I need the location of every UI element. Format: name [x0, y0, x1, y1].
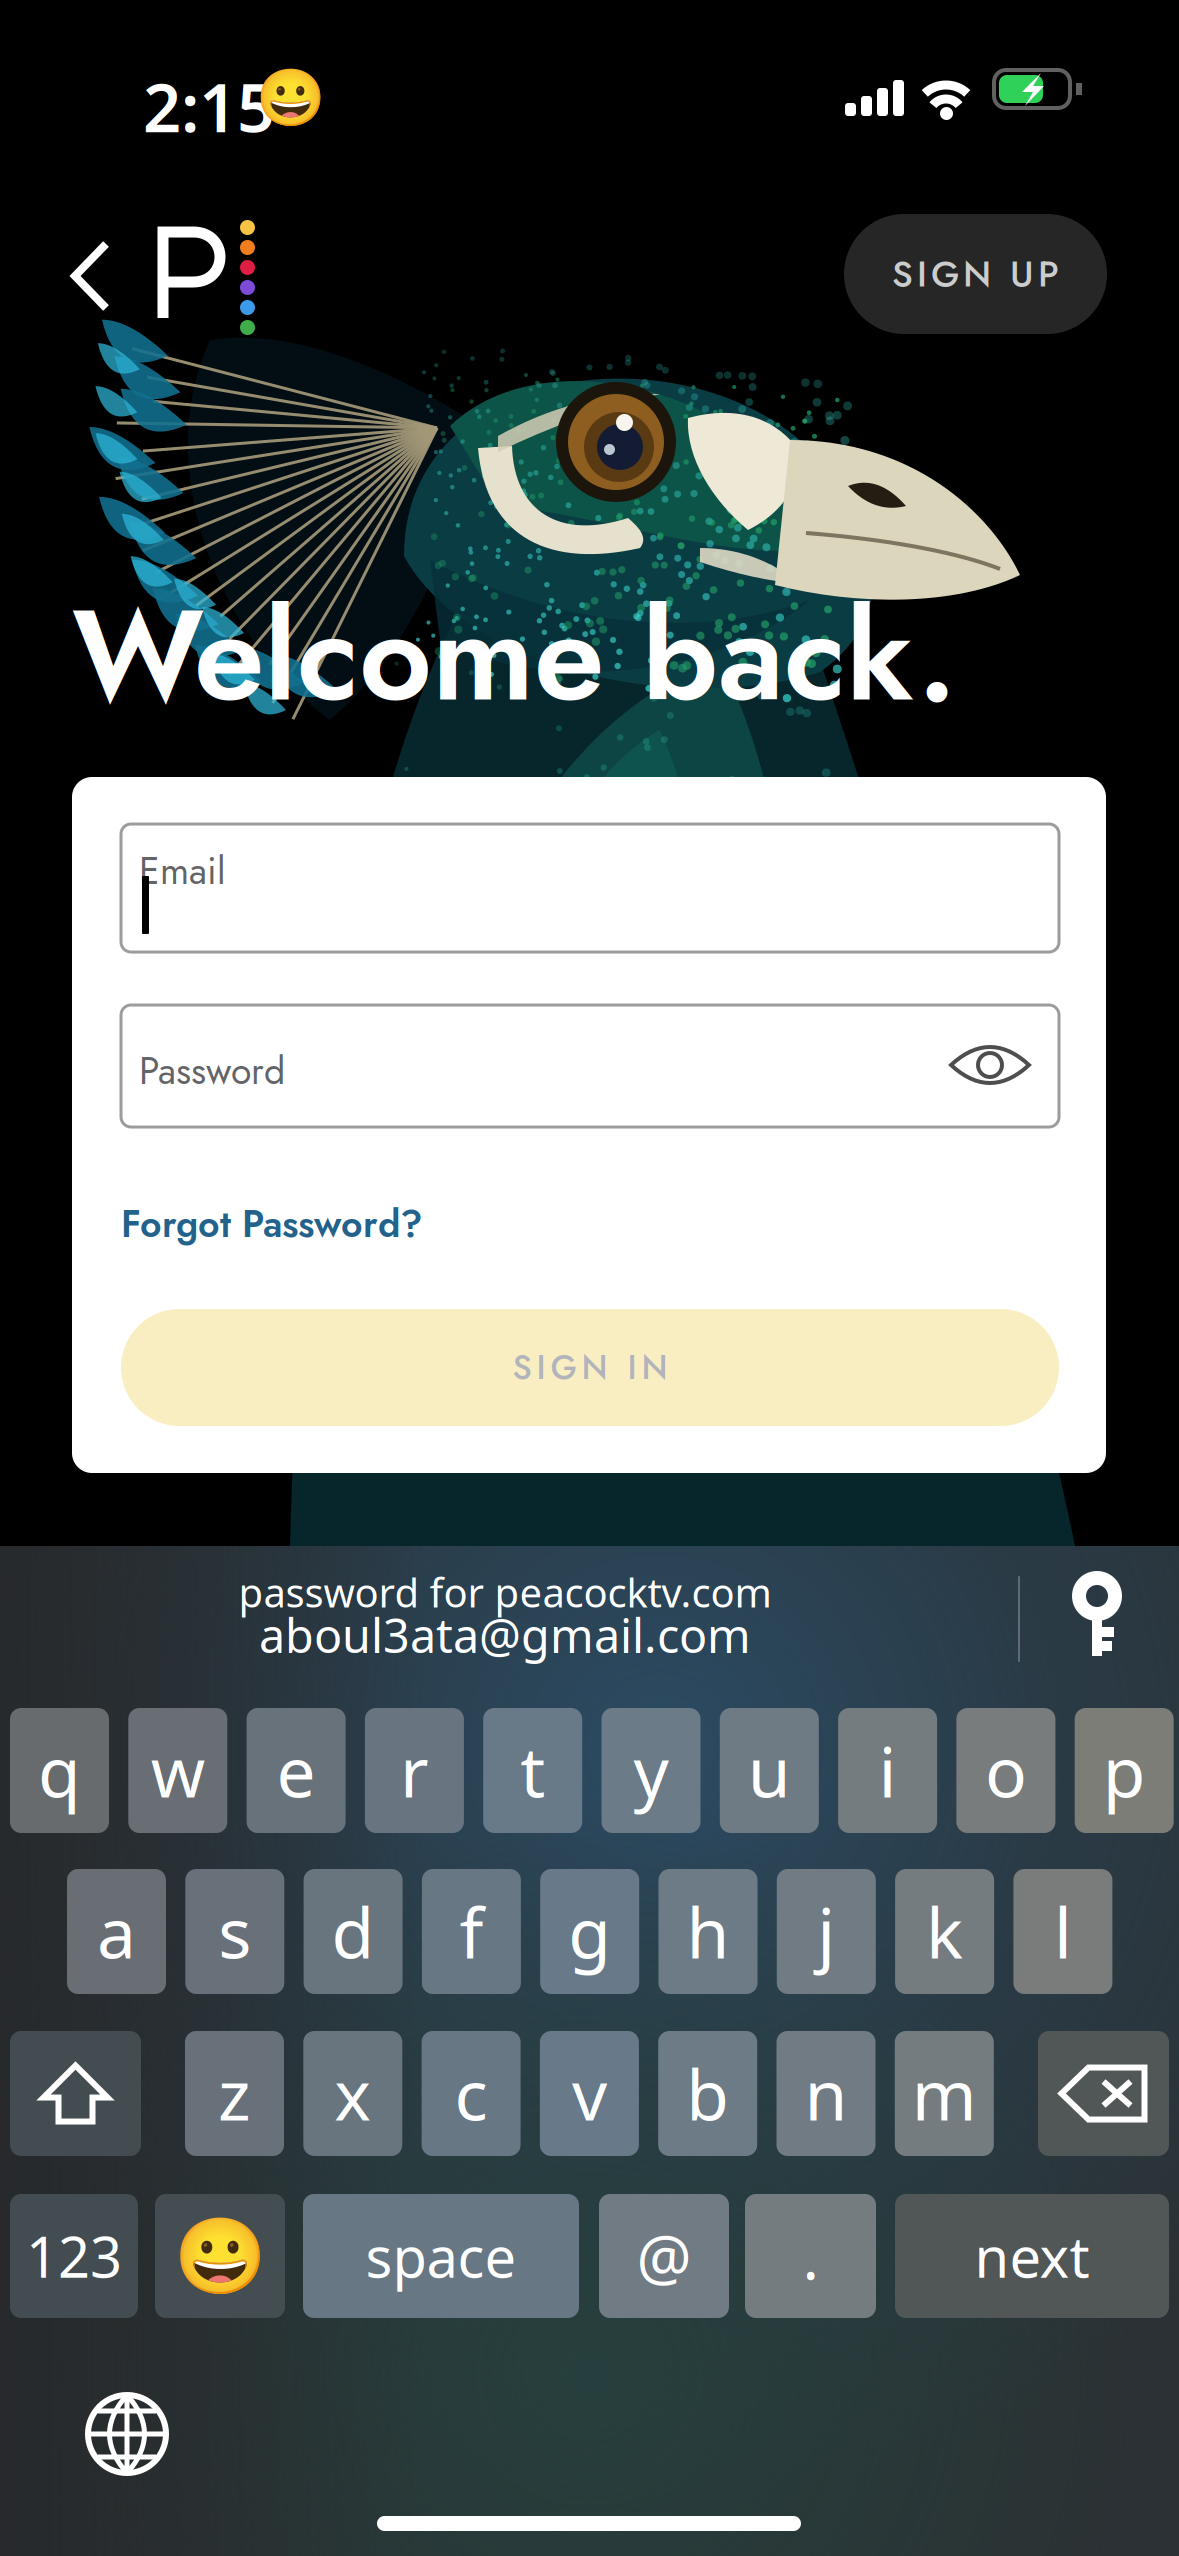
- button[interactable]: Delete: [1038, 2031, 1169, 2156]
- button[interactable]: g: [540, 1869, 639, 1994]
- button[interactable]: Show password: [947, 1035, 1033, 1095]
- staticText: n: [804, 2047, 847, 2140]
- staticText: k: [926, 1885, 963, 1978]
- staticText: g: [568, 1885, 611, 1978]
- button[interactable]: k: [895, 1869, 994, 1994]
- button[interactable]: Back: [60, 222, 124, 330]
- staticText: SIGN IN: [512, 1343, 667, 1392]
- button[interactable]: .: [745, 2194, 876, 2318]
- button[interactable]: Shift: [10, 2031, 141, 2156]
- staticText: o: [985, 1724, 1027, 1817]
- staticText: p: [1103, 1724, 1146, 1817]
- staticText: t: [520, 1724, 545, 1817]
- staticText: c: [455, 2047, 488, 2140]
- staticText: e: [277, 1724, 316, 1817]
- button[interactable]: p: [1075, 1708, 1174, 1833]
- staticText: z: [218, 2047, 251, 2140]
- staticText: x: [334, 2047, 371, 2140]
- staticText: aboul3ata@gmail.com: [259, 1604, 751, 1666]
- button[interactable]: r: [365, 1708, 464, 1833]
- staticText: b: [686, 2047, 729, 2140]
- button[interactable]: m: [895, 2031, 994, 2156]
- button[interactable]: @: [599, 2194, 729, 2318]
- staticText: q: [38, 1724, 81, 1817]
- staticText: SIGN UP: [892, 248, 1059, 300]
- button[interactable]: t: [483, 1708, 582, 1833]
- button[interactable]: h: [658, 1869, 757, 1994]
- staticText: h: [686, 1885, 729, 1978]
- button[interactable]: Forgot Password?: [121, 1197, 423, 1251]
- button[interactable]: c: [422, 2031, 521, 2156]
- button[interactable]: z: [185, 2031, 284, 2156]
- button[interactable]: e: [247, 1708, 346, 1833]
- button[interactable]: x: [303, 2031, 402, 2156]
- staticText: @: [636, 2215, 691, 2297]
- staticText: f: [459, 1885, 483, 1978]
- button[interactable]: b: [658, 2031, 757, 2156]
- staticText: a: [97, 1885, 136, 1978]
- button[interactable]: l: [1013, 1869, 1112, 1994]
- staticText: 123: [26, 2219, 122, 2293]
- button[interactable]: SIGN UP: [844, 214, 1107, 334]
- button[interactable]: i: [838, 1708, 937, 1833]
- staticText: .: [802, 2215, 818, 2297]
- button[interactable]: a: [67, 1869, 166, 1994]
- staticText: y: [633, 1724, 668, 1817]
- staticText: Forgot Password?: [121, 1197, 423, 1251]
- button[interactable]: v: [540, 2031, 639, 2156]
- staticText: j: [817, 1885, 835, 1978]
- staticText: i: [879, 1724, 897, 1817]
- staticText: 2:15: [143, 62, 275, 150]
- staticText: space: [365, 2219, 516, 2293]
- button[interactable]: o: [956, 1708, 1055, 1833]
- staticText: s: [218, 1885, 251, 1978]
- staticText: 😀: [173, 2213, 266, 2299]
- button[interactable]: j: [777, 1869, 876, 1994]
- button[interactable]: y: [601, 1708, 700, 1833]
- staticText: v: [572, 2047, 607, 2140]
- button[interactable]: d: [304, 1869, 403, 1994]
- button[interactable]: s: [185, 1869, 284, 1994]
- button[interactable]: next: [895, 2194, 1169, 2318]
- staticText: Password: [139, 1044, 285, 1098]
- staticText: u: [748, 1724, 791, 1817]
- button[interactable]: space: [303, 2194, 579, 2318]
- staticText: password for peacocktv.com: [238, 1565, 771, 1618]
- button[interactable]: u: [720, 1708, 819, 1833]
- staticText: next: [974, 2219, 1089, 2293]
- button[interactable]: 123: [10, 2194, 138, 2318]
- button[interactable]: q: [10, 1708, 109, 1833]
- staticText: w: [151, 1724, 205, 1817]
- staticText: d: [332, 1885, 375, 1978]
- staticText: r: [400, 1724, 429, 1817]
- button[interactable]: Passwords: [1058, 1568, 1138, 1668]
- button[interactable]: Emoji: [155, 2194, 285, 2318]
- staticText: l: [1054, 1885, 1072, 1978]
- staticText: m: [912, 2047, 977, 2140]
- button[interactable]: Switch keyboard: [84, 2391, 170, 2477]
- staticText: 😀: [256, 66, 326, 130]
- button[interactable]: n: [776, 2031, 875, 2156]
- staticText: Email: [139, 844, 226, 898]
- button[interactable]: f: [422, 1869, 521, 1994]
- button[interactable]: w: [128, 1708, 227, 1833]
- staticText: Welcome back.: [72, 564, 957, 747]
- button[interactable]: SIGN IN: [121, 1309, 1059, 1426]
